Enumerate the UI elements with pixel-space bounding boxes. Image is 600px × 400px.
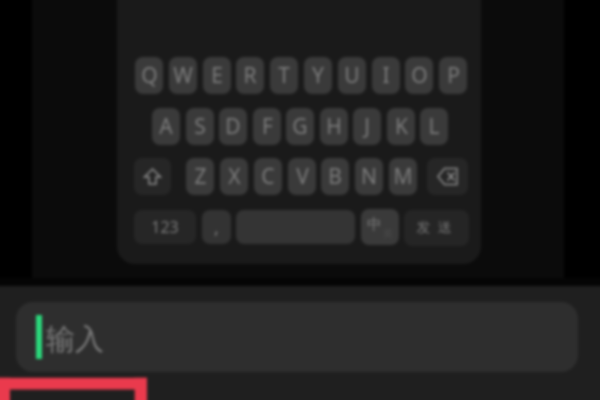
staticText: O [411, 61, 428, 90]
button[interactable]: F [253, 108, 281, 145]
button[interactable]: M [389, 158, 417, 195]
staticText: 发送 [413, 219, 455, 237]
button[interactable]: Y [304, 57, 332, 94]
button[interactable]: D [219, 108, 247, 145]
staticText: J [364, 112, 370, 141]
staticText: D [225, 112, 241, 141]
button[interactable]: J [353, 108, 381, 145]
button[interactable]: I [372, 57, 400, 94]
button[interactable]: 发送 [404, 210, 469, 246]
button[interactable]: , [202, 210, 231, 244]
staticText: N [361, 162, 377, 191]
staticText: E [211, 61, 223, 90]
staticText: G [292, 112, 308, 141]
button[interactable]: H [320, 108, 348, 145]
staticText: U [344, 61, 360, 90]
staticText: X [228, 162, 241, 191]
button[interactable]: L [420, 108, 448, 145]
staticText: Z [194, 162, 207, 191]
staticText: V [296, 162, 309, 191]
button[interactable]: R [236, 57, 264, 94]
button[interactable]: S [186, 108, 214, 145]
button[interactable]: B [321, 158, 349, 195]
button[interactable]: E [203, 57, 231, 94]
staticText: K [395, 112, 408, 141]
staticText: M [393, 162, 413, 191]
staticText: C [261, 162, 275, 191]
button[interactable]: G [286, 108, 314, 145]
staticText: W [173, 61, 193, 90]
staticText: 输入 [46, 321, 104, 358]
staticText: S [194, 112, 206, 141]
button[interactable]: 123 [134, 210, 196, 244]
button[interactable]: Shift [134, 158, 171, 195]
button[interactable]: K [387, 108, 415, 145]
staticText: , [214, 215, 219, 240]
button[interactable]: T [270, 57, 298, 94]
staticText: Y [312, 61, 324, 90]
button[interactable]: V [288, 158, 316, 195]
button[interactable]: W [169, 57, 197, 94]
button[interactable]: Q [135, 57, 163, 94]
button[interactable] [236, 210, 355, 244]
button[interactable]: U [338, 57, 366, 94]
button[interactable]: X [220, 158, 248, 195]
staticText: R [243, 61, 257, 90]
staticText: F [262, 112, 273, 141]
staticText: L [428, 112, 440, 141]
staticText: P [447, 61, 460, 90]
button[interactable]: Z [186, 158, 214, 195]
button[interactable]: 中 [361, 209, 399, 245]
button[interactable]: O [405, 57, 433, 94]
button[interactable]: 输入 [16, 302, 578, 372]
button[interactable]: N [355, 158, 383, 195]
button[interactable]: Backspace [427, 158, 468, 195]
staticText: Q [141, 61, 158, 90]
staticText: A [159, 112, 173, 141]
button[interactable]: P [439, 57, 467, 94]
staticText: T [278, 61, 290, 90]
staticText: I [382, 61, 390, 90]
staticText: 中 [367, 215, 382, 234]
staticText: B [328, 162, 342, 191]
staticText: 123 [151, 216, 179, 238]
button[interactable]: A [152, 108, 180, 145]
staticText: H [326, 112, 342, 141]
button[interactable]: C [254, 158, 282, 195]
